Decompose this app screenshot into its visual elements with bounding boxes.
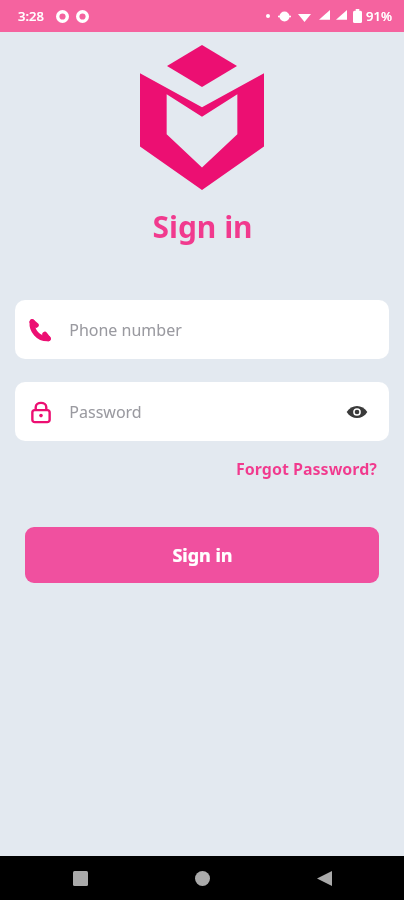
button[interactable]: Recent apps [60, 858, 100, 898]
staticText: Password [69, 401, 142, 423]
staticText: Forgot Password? [236, 458, 377, 480]
staticText: Sign in [152, 206, 253, 247]
button[interactable]: Phone number [15, 300, 389, 359]
staticText: Phone number [69, 319, 182, 341]
button[interactable]: Sign in [25, 527, 379, 583]
button[interactable]: Forgot Password? [234, 455, 379, 483]
button[interactable]: Home [182, 858, 222, 898]
staticText: 3:28 [18, 7, 44, 25]
button[interactable]: Password [15, 382, 389, 441]
button[interactable]: Back [304, 858, 344, 898]
button[interactable]: Show password [339, 394, 375, 430]
staticText: 91% [366, 7, 392, 25]
staticText: Sign in [172, 543, 233, 568]
